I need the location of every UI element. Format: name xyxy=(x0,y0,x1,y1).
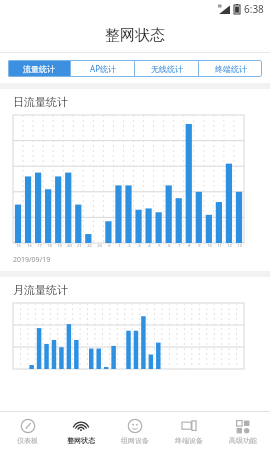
staticText: 21 xyxy=(77,243,82,248)
staticText: 11 xyxy=(217,243,222,248)
staticText: 23 xyxy=(97,243,102,248)
staticText: 高级功能 xyxy=(229,436,257,445)
staticText: 仪表板 xyxy=(17,436,38,445)
staticText: 15 xyxy=(16,243,21,248)
staticText: 16 xyxy=(27,243,32,248)
staticText: 整网状态 xyxy=(67,436,95,445)
button[interactable]: 组网设备 xyxy=(108,412,162,450)
staticText: 4 xyxy=(148,243,151,248)
other: 整网状态 xyxy=(73,418,89,434)
button[interactable]: 无线统计 xyxy=(135,60,198,77)
staticText: 7 xyxy=(178,243,181,248)
staticText: 12 xyxy=(227,243,232,248)
staticText: 9 xyxy=(198,243,201,248)
other: 高级功能 xyxy=(235,418,251,434)
staticText: AP统计 xyxy=(90,63,116,74)
staticText: 6:38 xyxy=(244,2,264,16)
other: 终端设备 xyxy=(181,418,197,434)
staticText: 组网设备 xyxy=(121,436,149,445)
staticText: 8 xyxy=(188,243,191,248)
staticText: 10 xyxy=(207,243,212,248)
button[interactable]: 终端设备 xyxy=(162,412,216,450)
button[interactable]: 整网状态 xyxy=(54,412,108,450)
staticText: 终端设备 xyxy=(175,436,203,445)
staticText: 18 xyxy=(47,243,52,248)
staticText: 0 xyxy=(108,243,111,248)
button[interactable]: AP统计 xyxy=(71,60,134,77)
staticText: 19 xyxy=(57,243,62,248)
staticText: 5 xyxy=(158,243,161,248)
staticText: 月流量统计 xyxy=(13,283,68,297)
button[interactable]: 流量统计 xyxy=(8,60,70,77)
staticText: 终端统计 xyxy=(215,64,247,74)
staticText: 17 xyxy=(37,243,42,248)
staticText: 3 xyxy=(138,243,141,248)
staticText: 日流量统计 xyxy=(13,95,68,109)
button[interactable]: 终端统计 xyxy=(199,60,262,77)
staticText: 6 xyxy=(168,243,171,248)
staticText: 2 xyxy=(128,243,131,248)
other: 组网设备 xyxy=(127,418,143,434)
button[interactable]: 仪表板 xyxy=(0,412,54,450)
staticText: 22 xyxy=(87,243,92,248)
staticText: 整网状态 xyxy=(105,26,165,45)
staticText: 无线统计 xyxy=(151,64,183,74)
staticText: 13 xyxy=(237,243,242,248)
staticText: 流量统计 xyxy=(23,64,55,74)
other: 仪表板 xyxy=(20,418,36,434)
staticText: 2019/09/19 xyxy=(13,255,51,265)
staticText: 20 xyxy=(67,243,72,248)
staticText: 1 xyxy=(118,243,121,248)
button[interactable]: 高级功能 xyxy=(216,412,270,450)
